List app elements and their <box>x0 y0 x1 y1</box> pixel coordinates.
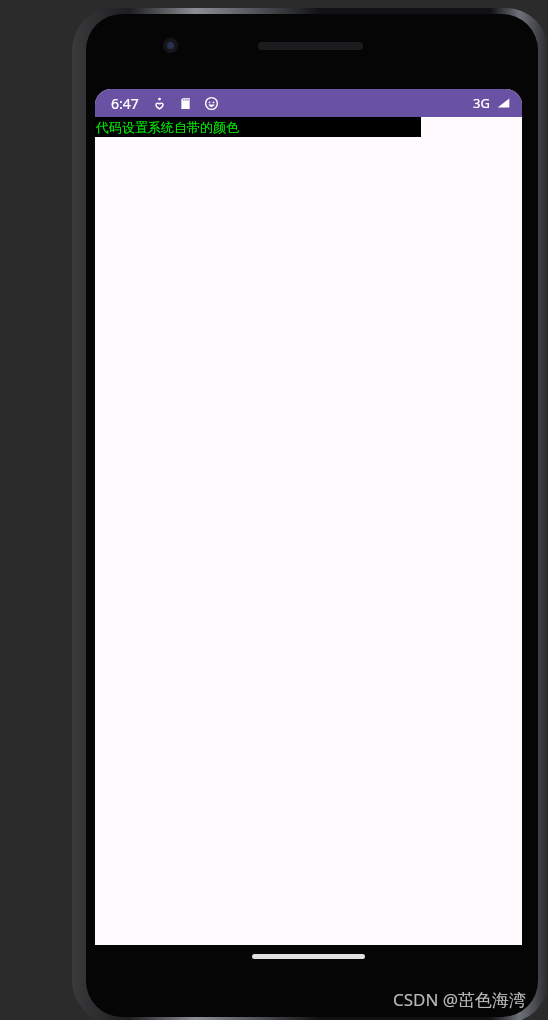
other: Home gesture bar <box>252 954 365 959</box>
staticText: 代码设置系统自带的颜色 <box>96 119 239 135</box>
staticText: 3G <box>473 94 490 112</box>
button[interactable]: 代码设置系统自带的颜色 <box>95 117 421 137</box>
staticText: 6:47 <box>111 94 139 113</box>
staticText: CSDN @茁色海湾 <box>392 988 526 1011</box>
